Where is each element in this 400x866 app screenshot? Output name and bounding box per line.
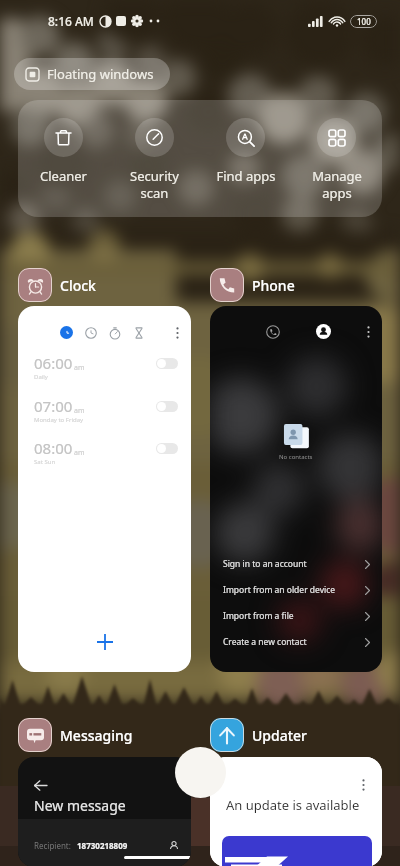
- staticText: Updater: [252, 726, 308, 745]
- button[interactable]: Sign in to an account: [210, 551, 382, 577]
- staticText: Import from a file: [223, 610, 294, 622]
- staticText: Find apps: [216, 167, 276, 185]
- button[interactable]: Find apps: [200, 100, 291, 217]
- button[interactable]: Messaging: [18, 718, 133, 752]
- staticText: Recipient:: [34, 840, 71, 851]
- button[interactable]: 06:00: [18, 306, 191, 672]
- button[interactable]: No contacts: [210, 306, 382, 672]
- staticText: Cleaner: [40, 167, 87, 185]
- button[interactable]: An update is available: [210, 757, 382, 866]
- staticText: Import from an older device: [223, 584, 336, 596]
- button[interactable]: Security scan: [109, 100, 200, 217]
- staticText: Phone: [252, 276, 295, 295]
- button[interactable]: Phone: [210, 268, 295, 302]
- staticText: An update is available: [226, 796, 360, 814]
- button[interactable]: Import from a file: [210, 603, 382, 629]
- button[interactable]: Manage apps: [291, 100, 382, 217]
- staticText: 18730218809: [77, 840, 128, 851]
- staticText: Create a new contact: [223, 636, 307, 648]
- button[interactable]: Import from an older device: [210, 577, 382, 603]
- staticText: Monday to Friday: [34, 416, 84, 424]
- staticText: Messaging: [60, 726, 133, 745]
- staticText: Manage apps: [312, 167, 362, 202]
- staticText: am: [74, 406, 85, 416]
- staticText: 07:00: [34, 396, 73, 416]
- button[interactable]: Floating windows: [14, 58, 170, 90]
- staticText: am: [74, 448, 85, 458]
- staticText: Clock: [60, 276, 96, 295]
- staticText: 06:00: [34, 353, 73, 373]
- staticText: 08:00: [34, 438, 73, 458]
- button[interactable]: Updater: [210, 718, 308, 752]
- staticText: Floating windows: [47, 65, 154, 83]
- staticText: New message: [34, 796, 126, 815]
- staticText: am: [74, 363, 85, 373]
- button[interactable]: Create a new contact: [210, 629, 382, 655]
- staticText: Sign in to an account: [223, 558, 307, 570]
- staticText: 8:16 AM: [48, 13, 94, 29]
- staticText: Sat Sun: [34, 458, 56, 466]
- staticText: Daily: [34, 373, 48, 381]
- button[interactable]: Cleaner: [18, 100, 109, 217]
- staticText: 100: [357, 16, 371, 27]
- staticText: Security scan: [130, 167, 179, 202]
- button[interactable]: New message: [18, 757, 191, 866]
- staticText: No contacts: [279, 453, 313, 461]
- button[interactable]: Clock: [18, 268, 96, 302]
